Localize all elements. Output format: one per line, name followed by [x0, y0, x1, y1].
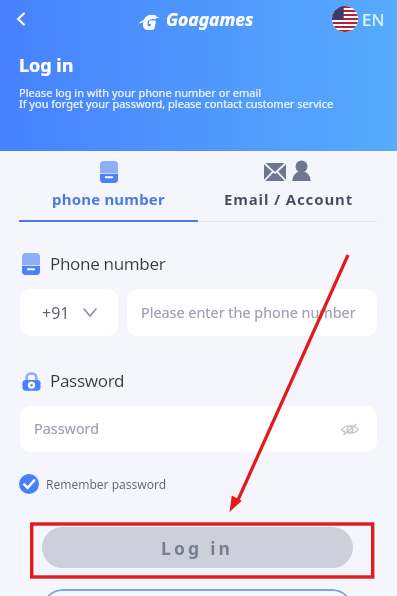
button[interactable]: Show password [337, 416, 363, 442]
button[interactable]: Email / Account [198, 155, 378, 209]
staticText: EN [362, 8, 385, 31]
button[interactable]: Back [4, 2, 38, 36]
staticText: Email / Account [224, 189, 353, 209]
button[interactable]: Log in [42, 527, 353, 568]
button[interactable]: Password [20, 406, 377, 452]
staticText: +91 [42, 302, 70, 324]
button[interactable]: Remember password [19, 474, 167, 494]
staticText: Log in [19, 53, 74, 78]
staticText: G [142, 8, 157, 30]
staticText: Password [50, 369, 125, 392]
button[interactable]: EN [330, 3, 387, 35]
staticText: Remember password [46, 476, 167, 492]
staticText: Goagames [166, 7, 254, 31]
staticText: Phone number [50, 252, 166, 275]
staticText: Log in [161, 536, 234, 560]
button[interactable]: +91 [20, 289, 118, 336]
staticText: Please enter the phone number [141, 303, 356, 323]
button[interactable]: Sign up [42, 589, 353, 596]
button[interactable]: phone number [19, 155, 198, 209]
button[interactable]: Please enter the phone number [127, 289, 377, 336]
staticText: phone number [52, 189, 165, 209]
staticText: Please log in with your phone number or … [19, 85, 334, 111]
staticText: Password [34, 419, 100, 439]
